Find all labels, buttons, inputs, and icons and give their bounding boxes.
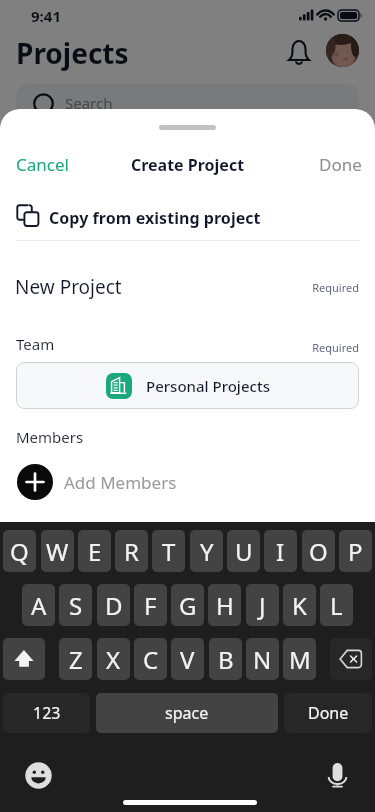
- staticText: M: [289, 643, 311, 676]
- staticText: A: [31, 589, 47, 622]
- staticText: R: [124, 535, 139, 568]
- staticText: Done: [308, 702, 349, 724]
- button[interactable]: M: [283, 638, 316, 680]
- staticText: New Project: [15, 274, 122, 300]
- staticText: J: [259, 589, 266, 622]
- button[interactable]: R: [115, 530, 148, 572]
- staticText: X: [106, 643, 121, 676]
- staticText: Personal Projects: [146, 376, 270, 396]
- button[interactable]: G: [171, 584, 204, 626]
- staticText: F: [144, 589, 157, 622]
- button[interactable]: S: [59, 584, 92, 626]
- button[interactable]: Shift: [3, 638, 45, 680]
- button[interactable]: H: [208, 584, 241, 626]
- staticText: Q: [10, 535, 29, 568]
- staticText: Cancel: [16, 153, 69, 176]
- button[interactable]: Y: [190, 530, 223, 572]
- button[interactable]: L: [320, 584, 353, 626]
- staticText: Y: [200, 535, 214, 568]
- staticText: G: [179, 589, 197, 622]
- button[interactable]: Z: [59, 638, 92, 680]
- button[interactable]: Backspace: [330, 638, 372, 680]
- staticText: Required: [274, 340, 359, 355]
- button[interactable]: V: [171, 638, 204, 680]
- staticText: Done: [319, 153, 362, 176]
- staticText: space: [165, 702, 209, 724]
- staticText: D: [105, 589, 123, 622]
- button[interactable]: Search: [16, 84, 359, 130]
- button[interactable]: Q: [3, 530, 36, 572]
- staticText: Z: [69, 643, 83, 676]
- staticText: T: [162, 535, 176, 568]
- staticText: P: [348, 535, 363, 568]
- staticText: C: [143, 643, 159, 676]
- button[interactable]: J: [246, 584, 279, 626]
- button[interactable]: W: [41, 530, 74, 572]
- button[interactable]: Dictation: [326, 759, 350, 783]
- button[interactable]: O: [302, 530, 335, 572]
- staticText: 9:41: [31, 6, 61, 26]
- button[interactable]: N: [246, 638, 279, 680]
- staticText: Required: [274, 280, 359, 295]
- staticText: I: [276, 535, 285, 568]
- button[interactable]: Done: [319, 153, 362, 177]
- button[interactable]: Done: [284, 693, 372, 733]
- staticText: S: [69, 589, 83, 622]
- staticText: Copy from existing project: [49, 207, 261, 229]
- button[interactable]: F: [134, 584, 167, 626]
- staticText: Team: [16, 334, 55, 354]
- button[interactable]: I: [264, 530, 297, 572]
- button[interactable]: K: [283, 584, 316, 626]
- staticText: 123: [33, 702, 61, 724]
- button[interactable]: B: [209, 638, 242, 680]
- button[interactable]: Profile: [326, 34, 359, 67]
- button[interactable]: Copy from existing project: [14, 198, 274, 228]
- staticText: L: [330, 589, 343, 622]
- button[interactable]: E: [78, 530, 111, 572]
- button[interactable]: A: [22, 584, 55, 626]
- button[interactable]: X: [97, 638, 130, 680]
- staticText: H: [216, 589, 234, 622]
- staticText: Projects: [16, 34, 129, 72]
- staticText: B: [218, 643, 234, 676]
- staticText: Members: [16, 427, 84, 447]
- staticText: V: [180, 643, 195, 676]
- staticText: Create Project: [0, 154, 375, 176]
- staticText: Add Members: [64, 471, 177, 494]
- button[interactable]: T: [152, 530, 185, 572]
- staticText: O: [309, 535, 328, 568]
- button[interactable]: Emoji keyboard: [25, 762, 52, 789]
- staticText: W: [46, 535, 69, 568]
- button[interactable]: U: [227, 530, 260, 572]
- button[interactable]: space: [96, 693, 278, 733]
- button[interactable]: Cancel: [16, 153, 69, 177]
- button[interactable]: C: [134, 638, 167, 680]
- staticText: U: [235, 535, 253, 568]
- staticText: N: [253, 643, 272, 676]
- button[interactable]: 123: [3, 693, 90, 733]
- staticText: K: [292, 589, 307, 622]
- staticText: E: [88, 535, 102, 568]
- button[interactable]: Personal Projects: [16, 362, 359, 409]
- button[interactable]: Add Members: [17, 464, 177, 500]
- button[interactable]: Notifications: [286, 38, 312, 64]
- staticText: Search: [65, 93, 113, 113]
- button[interactable]: P: [339, 530, 372, 572]
- button[interactable]: D: [97, 584, 130, 626]
